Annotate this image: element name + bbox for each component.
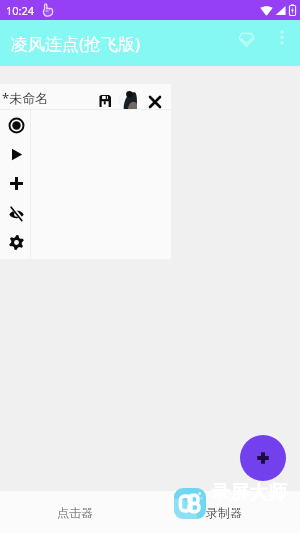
button[interactable]: Add [2,169,30,197]
button[interactable]: Play [2,140,30,168]
staticText: 录制器 [206,505,242,520]
staticText: 10:24 [6,3,35,18]
staticText: 点击器 [57,505,93,520]
button[interactable]: Add [240,435,286,481]
button[interactable]: Premium [229,22,263,56]
button[interactable]: Save [96,92,114,110]
button[interactable]: Close [145,92,165,112]
button[interactable]: Avatar [118,90,137,109]
staticText: 录屏大师 [211,481,287,505]
button[interactable]: 点击器 [0,491,150,533]
button[interactable]: More options [267,22,297,52]
staticText: 凌风连点(抢飞版) [11,32,141,55]
button[interactable]: Record [2,111,30,139]
staticText: *未命名 [2,89,49,107]
button[interactable]: Hide [2,199,30,227]
button[interactable]: Settings [2,228,30,256]
button[interactable]: 录制器 [150,491,300,533]
